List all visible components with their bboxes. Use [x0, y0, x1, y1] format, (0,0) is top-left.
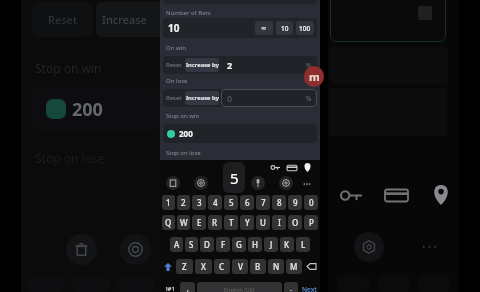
staticText: Reset [48, 12, 78, 27]
button[interactable]: A [170, 237, 183, 252]
button[interactable]: English (US) [197, 282, 282, 292]
button[interactable]: O [288, 215, 302, 230]
button[interactable]: Passwords [338, 182, 364, 208]
staticText: I [278, 217, 281, 228]
button[interactable]: Stickers [194, 176, 208, 190]
button[interactable]: Clipboard [166, 176, 180, 190]
button[interactable]: !#1 [161, 282, 179, 292]
button[interactable]: 5 [223, 162, 245, 193]
button[interactable]: Y [240, 215, 254, 230]
button[interactable]: Reset [163, 89, 185, 107]
button[interactable]: H [248, 237, 262, 252]
button[interactable]: Increase [96, 2, 164, 37]
button[interactable]: D [200, 237, 214, 252]
staticText: F [221, 239, 226, 250]
button[interactable]: 3 [192, 195, 206, 210]
button[interactable]: . [284, 282, 298, 292]
button[interactable]: 6 [240, 195, 254, 210]
staticText: 5 [229, 197, 234, 208]
button[interactable]: Payment cards [286, 162, 297, 173]
button[interactable]: Voice input [251, 176, 265, 190]
button[interactable]: 9 [288, 195, 302, 210]
button[interactable]: Addresses [428, 182, 454, 208]
button[interactable]: 5 [224, 195, 238, 210]
button[interactable]: Delete [66, 234, 97, 265]
staticText: G [236, 239, 242, 250]
button[interactable]: Chat bubble [304, 66, 324, 87]
button[interactable]: 1 [162, 195, 175, 210]
button[interactable]: • • • [422, 240, 437, 252]
staticText: Z [182, 261, 187, 272]
button[interactable]: Shift [161, 259, 175, 274]
button[interactable]: V [232, 259, 248, 274]
button[interactable]: Settings [120, 234, 151, 265]
button[interactable]: C [214, 259, 230, 274]
staticText: Increase [102, 12, 147, 27]
button[interactable]: Reset [163, 56, 185, 74]
button[interactable]: F [216, 237, 230, 252]
button[interactable] [330, 0, 446, 42]
button[interactable]: Settings [354, 232, 384, 262]
button[interactable]: U [256, 215, 270, 230]
staticText: Q [165, 217, 172, 228]
button[interactable]: Settings [279, 176, 293, 190]
button[interactable]: Addresses [302, 162, 313, 173]
button[interactable]: Increase by [185, 91, 219, 105]
button[interactable]: Passwords [270, 162, 281, 173]
button[interactable]: ∞ [255, 21, 273, 35]
button[interactable]: G [232, 237, 246, 252]
button[interactable]: Next [299, 282, 319, 292]
button[interactable]: 10 [163, 18, 317, 38]
button[interactable]: Payment cards [383, 182, 409, 208]
button[interactable]: 2 [221, 56, 317, 74]
button[interactable]: , [180, 282, 195, 292]
staticText: X [201, 261, 206, 272]
staticText: 7 [261, 197, 266, 208]
button[interactable]: Reset [32, 2, 93, 37]
button[interactable]: K [280, 237, 294, 252]
button[interactable]: 200 [32, 86, 160, 132]
button[interactable]: 8 [272, 195, 286, 210]
button[interactable]: M [286, 259, 302, 274]
button[interactable]: Increase by [185, 58, 219, 72]
staticText: 200 [72, 97, 103, 122]
button[interactable]: 0 [304, 195, 318, 210]
button[interactable]: Backspace [303, 259, 319, 274]
button[interactable]: 100 [296, 21, 314, 35]
button[interactable]: Z [176, 259, 193, 274]
staticText: D [204, 239, 210, 250]
button[interactable]: L [296, 237, 310, 252]
button[interactable]: W [177, 215, 190, 230]
button[interactable]: N [268, 259, 284, 274]
button[interactable]: Q [162, 215, 175, 230]
staticText: Stop on win [166, 112, 200, 120]
staticText: S [189, 239, 194, 250]
button[interactable]: 200 [163, 124, 317, 143]
staticText: T [229, 217, 234, 228]
button[interactable]: B [250, 259, 266, 274]
button[interactable]: X [195, 259, 212, 274]
button[interactable]: R [208, 215, 222, 230]
button[interactable]: 0 [221, 89, 317, 107]
button[interactable]: ••• [303, 180, 311, 190]
button[interactable]: 4 [208, 195, 222, 210]
staticText: K [284, 239, 290, 250]
button[interactable]: 7 [256, 195, 270, 210]
staticText: 0 [309, 197, 314, 208]
button[interactable]: T [224, 215, 238, 230]
button[interactable]: J [264, 237, 278, 252]
button[interactable]: S [185, 237, 198, 252]
button[interactable]: I [272, 215, 286, 230]
button[interactable]: 10 [276, 21, 293, 35]
button[interactable]: P [304, 215, 318, 230]
button[interactable]: E [192, 215, 206, 230]
button[interactable]: 2 [177, 195, 190, 210]
